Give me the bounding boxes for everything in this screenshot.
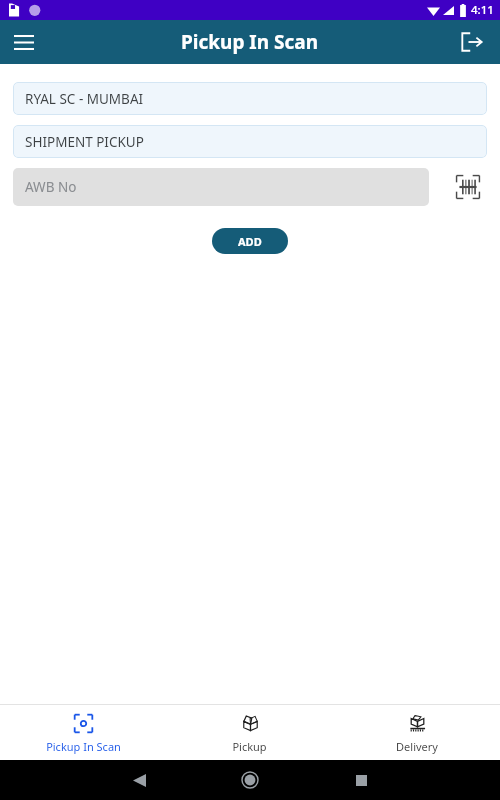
staticText: ADD: [238, 234, 262, 249]
button[interactable]: SHIPMENT PICKUP: [13, 125, 487, 158]
staticText: Pickup In Scan: [181, 29, 319, 55]
button[interactable]: AWB No: [13, 168, 429, 206]
button[interactable]: RYAL SC - MUMBAI: [13, 82, 487, 115]
button[interactable]: Pickup In Scan: [0, 705, 166, 760]
button[interactable]: Pickup: [166, 705, 333, 760]
staticText: SHIPMENT PICKUP: [25, 133, 144, 151]
staticText: AWB No: [25, 178, 77, 196]
button[interactable]: ADD: [212, 228, 288, 254]
staticText: Delivery: [396, 739, 438, 754]
staticText: Pickup In Scan: [46, 739, 121, 754]
button[interactable]: Delivery: [333, 705, 500, 760]
staticText: Pickup: [232, 739, 267, 754]
staticText: RYAL SC - MUMBAI: [25, 90, 144, 108]
button[interactable]: Open navigation menu: [4, 22, 44, 62]
button[interactable]: Scan barcode: [449, 168, 487, 206]
staticText: 4:11: [471, 2, 494, 18]
button[interactable]: Logout: [452, 22, 492, 62]
